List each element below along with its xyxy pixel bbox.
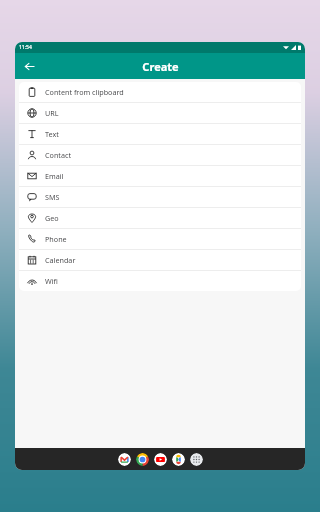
button[interactable]: SMS <box>19 187 301 207</box>
button[interactable]: Gmail <box>118 453 131 466</box>
button[interactable]: Contact <box>19 145 301 165</box>
staticText: Email <box>45 171 64 181</box>
staticText: SMS <box>45 192 60 202</box>
button[interactable]: Wifi <box>19 271 301 291</box>
button[interactable]: Email <box>19 166 301 186</box>
button[interactable]: Chrome <box>136 453 149 466</box>
staticText: Content from clipboard <box>45 87 124 97</box>
button[interactable]: Photos <box>172 453 185 466</box>
staticText: Calendar <box>45 255 76 265</box>
staticText: Geo <box>45 213 59 223</box>
staticText: Create <box>142 59 179 74</box>
staticText: Wifi <box>45 276 58 286</box>
staticText: Contact <box>45 150 72 160</box>
button[interactable]: All apps <box>190 453 203 466</box>
button[interactable]: Geo <box>19 208 301 228</box>
button[interactable]: Text <box>19 124 301 144</box>
button[interactable]: YouTube <box>154 453 167 466</box>
staticText: 11:54 <box>19 44 32 51</box>
button[interactable]: Calendar <box>19 250 301 270</box>
button[interactable]: URL <box>19 103 301 123</box>
staticText: URL <box>45 108 59 118</box>
button[interactable]: Back <box>19 56 39 76</box>
button[interactable]: Content from clipboard <box>19 82 301 102</box>
button[interactable]: Phone <box>19 229 301 249</box>
staticText: Text <box>45 129 59 139</box>
staticText: Phone <box>45 234 67 244</box>
